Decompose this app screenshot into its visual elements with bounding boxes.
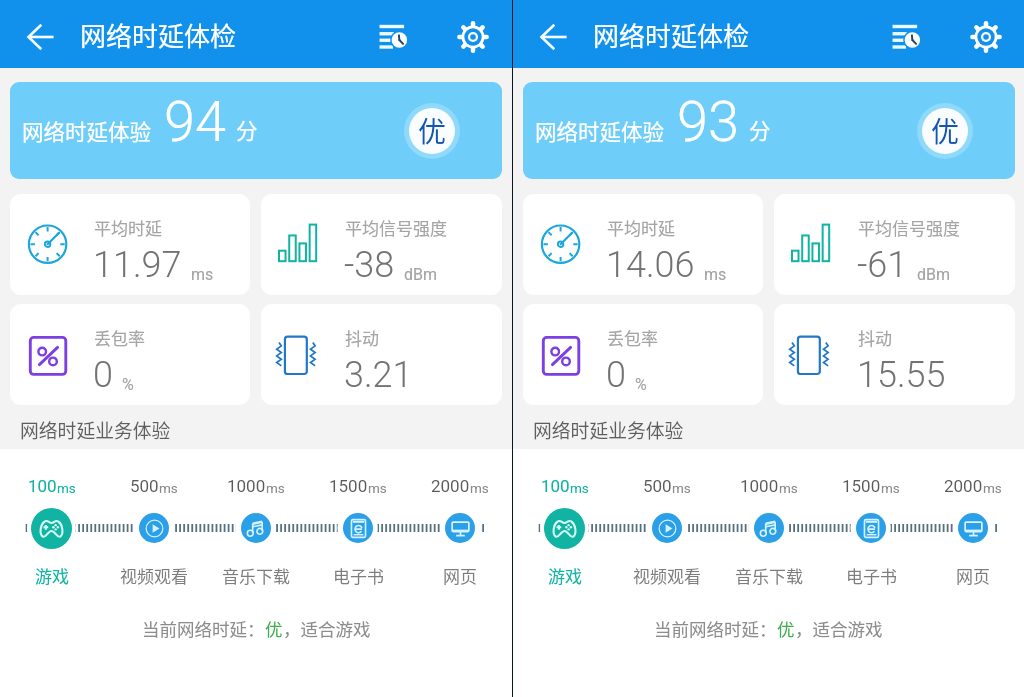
button[interactable]: 丢包率 [10, 304, 250, 405]
button[interactable]: History [364, 10, 420, 63]
staticText: dBm [917, 265, 951, 284]
button[interactable]: Settings [445, 10, 500, 63]
staticText: 94 [164, 89, 227, 155]
staticText: 游戏 [548, 563, 582, 588]
staticText: 丢包率 [94, 325, 145, 350]
staticText: 分 [749, 114, 771, 145]
staticText: % [122, 375, 134, 394]
staticText: 网络时延体验 [22, 115, 152, 146]
button[interactable]: Back [526, 10, 581, 63]
staticText: ms [470, 480, 489, 496]
staticText: ms [57, 480, 76, 496]
button[interactable]: 视频观看 [652, 513, 682, 543]
staticText: 平均信号强度 [858, 215, 960, 240]
staticText: 14.06 [606, 244, 695, 286]
staticText: 1500 [329, 476, 368, 496]
staticText: 500 [130, 476, 159, 496]
staticText: 游戏 [35, 563, 69, 588]
button[interactable]: 网络时延体验 [10, 82, 502, 179]
button[interactable]: 电子书 [343, 513, 373, 543]
staticText: ms [159, 480, 178, 496]
staticText: ms [368, 480, 387, 496]
staticText: 电子书 [846, 563, 897, 588]
staticText: 平均时延 [94, 215, 162, 240]
button[interactable]: 游戏 [544, 508, 585, 549]
staticText: 平均信号强度 [345, 215, 447, 240]
button[interactable]: 网页 [958, 513, 988, 543]
staticText: 网络时延业务体验 [20, 416, 171, 443]
staticText: -38 [344, 244, 395, 286]
staticText: 0 [606, 354, 626, 396]
button[interactable]: Settings [958, 10, 1013, 63]
staticText: 平均时延 [607, 215, 675, 240]
staticText: ms [704, 265, 727, 284]
staticText: ms [779, 480, 798, 496]
staticText: 电子书 [333, 563, 384, 588]
button[interactable]: 网页 [445, 513, 475, 543]
staticText: ms [672, 480, 691, 496]
staticText: 100 [541, 476, 570, 496]
staticText: -61 [857, 244, 908, 286]
staticText: 网络时延体检 [593, 16, 750, 54]
staticText: 分 [236, 114, 258, 145]
staticText: 网页 [956, 563, 990, 588]
staticText: 优 [931, 110, 960, 151]
staticText: 网络时延业务体验 [533, 416, 684, 443]
staticText: ms [266, 480, 285, 496]
button[interactable]: 抖动 [774, 304, 1015, 405]
staticText: 网页 [443, 563, 477, 588]
staticText: 2000 [944, 476, 983, 496]
staticText: 优 [777, 616, 795, 641]
button[interactable]: 抖动 [261, 304, 502, 405]
button[interactable]: 丢包率 [523, 304, 763, 405]
staticText: 视频观看 [633, 563, 701, 588]
staticText: 当前网络时延： [654, 616, 777, 641]
button[interactable]: 电子书 [856, 513, 886, 543]
staticText: ms [881, 480, 900, 496]
button[interactable]: 平均信号强度 [774, 194, 1015, 295]
staticText: 3.21 [344, 354, 413, 396]
staticText: 音乐下载 [735, 563, 803, 588]
staticText: dBm [404, 265, 438, 284]
staticText: 11.97 [93, 244, 182, 286]
staticText: ms [570, 480, 589, 496]
staticText: 500 [643, 476, 672, 496]
button[interactable]: 音乐下载 [241, 513, 271, 543]
button[interactable]: 平均信号强度 [261, 194, 502, 295]
button[interactable]: 视频观看 [139, 513, 169, 543]
staticText: ，适合游戏 [283, 616, 371, 641]
staticText: 抖动 [858, 325, 892, 350]
staticText: ，适合游戏 [795, 616, 883, 641]
button[interactable]: 网络时延体验 [523, 82, 1015, 179]
button[interactable]: Back [13, 10, 68, 63]
staticText: 2000 [431, 476, 470, 496]
staticText: 当前网络时延： [142, 616, 265, 641]
staticText: 93 [677, 89, 740, 155]
staticText: 1500 [842, 476, 881, 496]
staticText: 丢包率 [607, 325, 658, 350]
staticText: 100 [28, 476, 57, 496]
staticText: 1000 [740, 476, 779, 496]
staticText: ms [983, 480, 1002, 496]
staticText: 网络时延体验 [535, 115, 665, 146]
staticText: % [635, 375, 647, 394]
staticText: 1000 [227, 476, 266, 496]
button[interactable]: History [877, 10, 933, 63]
button[interactable]: 平均时延 [10, 194, 250, 295]
staticText: ms [191, 265, 214, 284]
staticText: 视频观看 [120, 563, 188, 588]
button[interactable]: 游戏 [31, 508, 72, 549]
button[interactable]: 音乐下载 [754, 513, 784, 543]
staticText: 抖动 [345, 325, 379, 350]
staticText: 15.55 [857, 354, 946, 396]
staticText: 网络时延体检 [80, 16, 237, 54]
staticText: 优 [418, 110, 447, 151]
staticText: 音乐下载 [222, 563, 290, 588]
staticText: 优 [265, 616, 283, 641]
button[interactable]: 平均时延 [523, 194, 763, 295]
staticText: 0 [93, 354, 113, 396]
